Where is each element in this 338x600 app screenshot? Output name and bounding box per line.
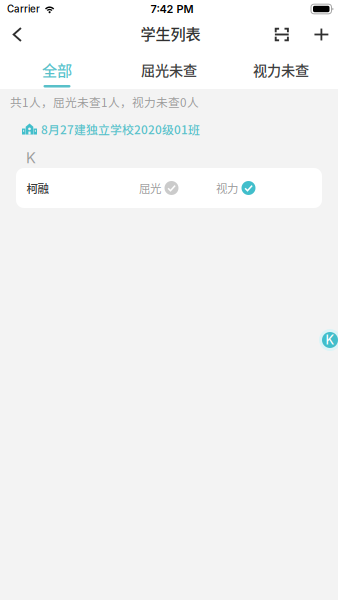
button[interactable]: Add [304, 18, 338, 51]
staticText: K [26, 149, 36, 167]
button[interactable]: 全部 [1, 51, 113, 89]
button[interactable]: 屈光未查 [113, 51, 225, 89]
button[interactable]: Back [0, 18, 34, 51]
button[interactable]: 8月27建独立学校2020级01班 [22, 120, 338, 138]
staticText: 屈光 [139, 180, 161, 196]
button[interactable]: 视力未查 [225, 51, 337, 89]
staticText: 7:42 PM [150, 2, 193, 16]
staticText: 柯融 [26, 180, 48, 196]
staticText: 视力未查 [253, 59, 309, 80]
button[interactable]: 柯融 [16, 168, 322, 208]
button[interactable]: Index K [319, 329, 338, 351]
staticText: 屈光未查 [141, 59, 197, 80]
staticText: K [325, 332, 334, 348]
staticText: 8月27建独立学校2020级01班 [41, 120, 200, 138]
staticText: 全部 [42, 58, 72, 80]
staticText: 共1人，屈光未查1人，视力未查0人 [10, 93, 199, 110]
staticText: Carrier [7, 3, 40, 15]
staticText: 视力 [216, 180, 238, 196]
button[interactable]: Scan [265, 18, 299, 51]
staticText: 学生列表 [140, 22, 200, 44]
